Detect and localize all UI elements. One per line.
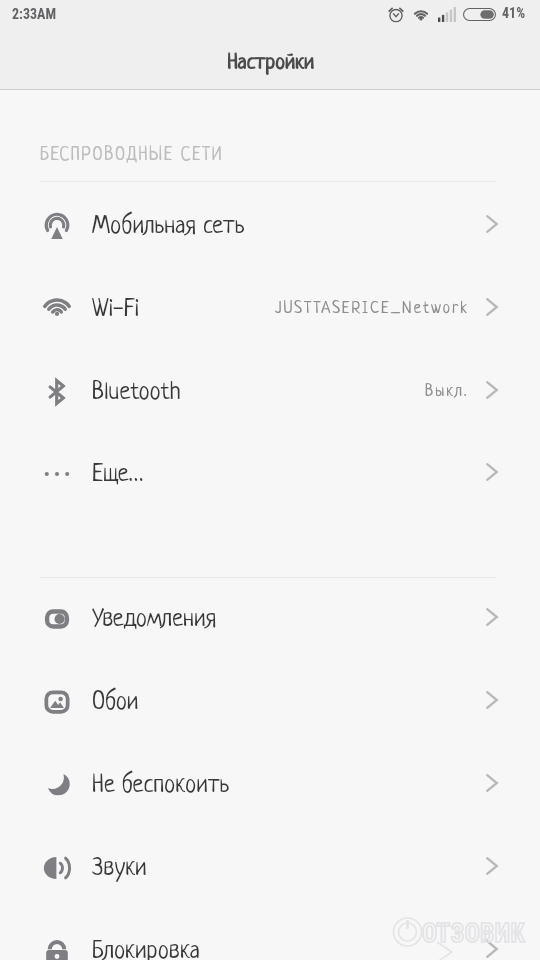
button[interactable]: Bluetooth: [0, 350, 540, 433]
button[interactable]: Wallpaper: [0, 660, 540, 743]
staticText: Bluetooth: [92, 380, 181, 406]
staticText: Еще…: [92, 462, 144, 488]
staticText: ОТЗОВИК: [422, 919, 526, 948]
staticText: Блокировка: [92, 939, 200, 960]
staticText: Не беспокоить: [92, 773, 230, 799]
button[interactable]: Sounds: [0, 826, 540, 909]
staticText: JUSTTASERICE_Network: [275, 300, 469, 318]
staticText: Wi-Fi: [92, 297, 140, 323]
staticText: Выкл.: [425, 383, 469, 401]
button[interactable]: Do not disturb: [0, 743, 540, 826]
staticText: Обои: [92, 690, 139, 716]
button[interactable]: Notifications: [0, 577, 540, 660]
staticText: Настройки: [227, 52, 314, 75]
staticText: Уведомления: [92, 607, 217, 633]
button[interactable]: More: [0, 432, 540, 515]
button[interactable]: Lock screen: [0, 909, 540, 960]
button[interactable]: Mobile network: [0, 184, 540, 267]
staticText: 2:33AM: [12, 6, 57, 22]
staticText: 41%: [502, 5, 526, 21]
button[interactable]: Wi-Fi: [0, 267, 540, 350]
staticText: Звуки: [92, 856, 147, 882]
staticText: БЕСПРОВОДНЫЕ СЕТИ: [40, 145, 224, 165]
staticText: Мобильная сеть: [92, 214, 245, 240]
